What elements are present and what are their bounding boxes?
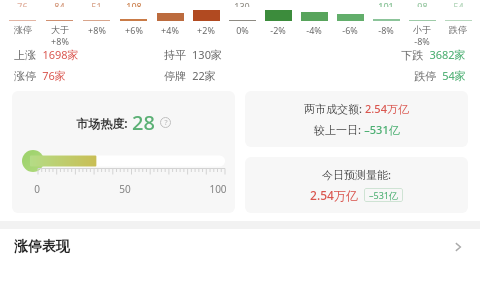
staticText: +2%: [197, 24, 215, 36]
other: 查看更多: [450, 239, 466, 255]
staticText: –531亿: [369, 189, 398, 201]
staticText: 54家: [442, 68, 466, 83]
staticText: -4%: [306, 24, 322, 36]
staticText: +6%: [125, 24, 143, 36]
staticText: ?: [164, 118, 168, 128]
staticText: 108: [126, 0, 142, 7]
staticText: 101: [378, 0, 394, 7]
staticText: 市场热度:: [76, 115, 128, 131]
staticText: 两市成交额:: [304, 101, 362, 116]
staticText: 涨停: [14, 69, 36, 83]
staticText: +8%: [88, 24, 106, 36]
button[interactable]: 两市成交额:: [245, 91, 468, 147]
staticText: 2.54万亿: [310, 187, 358, 203]
staticText: 上涨: [14, 48, 36, 62]
staticText: 50: [119, 182, 131, 196]
button[interactable]: 市场热度:: [12, 91, 235, 213]
staticText: -8%: [378, 24, 394, 36]
staticText: 持平: [164, 48, 186, 62]
staticText: +8%: [51, 35, 69, 45]
button[interactable]: 涨停表现: [0, 229, 480, 265]
staticText: 76: [17, 0, 28, 7]
staticText: -6%: [342, 24, 358, 36]
staticText: 130家: [192, 47, 222, 62]
staticText: 小于: [413, 24, 431, 35]
staticText: 较上一日:: [314, 122, 361, 137]
staticText: 51: [91, 0, 102, 7]
staticText: 54: [453, 0, 464, 7]
staticText: 84: [54, 0, 65, 7]
staticText: -8%: [414, 35, 430, 45]
staticText: –531亿: [364, 122, 400, 137]
staticText: 今日预测量能:: [322, 167, 391, 182]
staticText: 停牌: [164, 69, 186, 83]
staticText: 98: [417, 0, 428, 7]
staticText: 涨停: [14, 24, 32, 35]
staticText: 22家: [192, 68, 216, 83]
staticText: 涨停表现: [14, 238, 70, 256]
button[interactable]: 今日预测量能:: [245, 157, 468, 213]
staticText: 大于: [51, 24, 69, 35]
staticText: 0%: [236, 24, 249, 36]
staticText: 28: [132, 109, 155, 136]
staticText: 跌停: [414, 69, 436, 83]
staticText: +4%: [161, 24, 179, 36]
button[interactable]: 说明: [160, 117, 171, 128]
staticText: 1698家: [42, 47, 79, 62]
staticText: 3682家: [429, 47, 466, 62]
staticText: 下跌: [401, 48, 423, 62]
staticText: -2%: [270, 24, 286, 36]
staticText: 2.54万亿: [365, 101, 409, 116]
staticText: 0: [34, 182, 40, 196]
staticText: 100: [209, 182, 227, 196]
staticText: 76家: [42, 68, 66, 83]
staticText: 130: [234, 0, 250, 7]
staticText: 跌停: [449, 24, 467, 35]
